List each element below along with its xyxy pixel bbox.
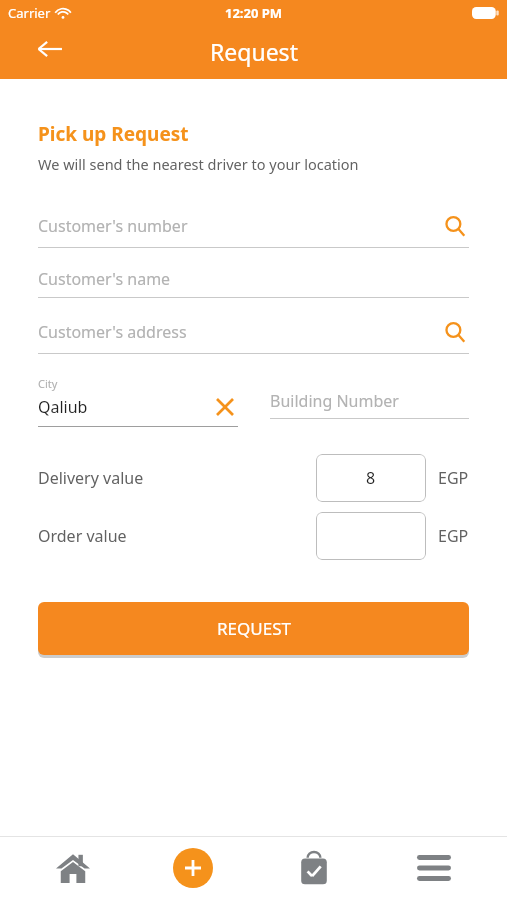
staticText: Customer's number: [38, 215, 441, 237]
button[interactable]: [316, 512, 426, 560]
button[interactable]: Back: [28, 27, 72, 71]
staticText: Order value: [38, 525, 316, 547]
staticText: Request: [210, 36, 298, 67]
button[interactable]: Home: [25, 836, 121, 900]
button[interactable]: Building Number: [270, 390, 469, 412]
button[interactable]: Search: [441, 212, 469, 240]
staticText: Customer's address: [38, 321, 441, 343]
button[interactable]: Customer's address: [38, 318, 469, 354]
button[interactable]: 8: [316, 454, 426, 502]
button[interactable]: Qaliub: [38, 394, 238, 420]
button[interactable]: Customer's name: [38, 268, 469, 298]
staticText: Customer's name: [38, 268, 469, 290]
button[interactable]: Search: [441, 318, 469, 346]
staticText: Carrier: [8, 4, 51, 22]
staticText: Building Number: [270, 390, 399, 412]
staticText: Delivery value: [38, 467, 316, 489]
staticText: Qaliub: [38, 396, 212, 418]
staticText: City: [38, 376, 58, 391]
staticText: EGP: [438, 467, 469, 489]
button[interactable]: Orders: [266, 836, 362, 900]
staticText: 8: [366, 467, 376, 489]
staticText: We will send the nearest driver to your …: [38, 154, 359, 174]
button[interactable]: Clear city: [212, 394, 238, 420]
staticText: REQUEST: [217, 617, 291, 640]
staticText: 12:20 PM: [225, 4, 283, 22]
button[interactable]: REQUEST: [38, 602, 469, 655]
button[interactable]: Customer's number: [38, 212, 469, 248]
button[interactable]: Add request: [145, 836, 241, 900]
staticText: EGP: [438, 525, 469, 547]
staticText: Pick up Request: [38, 121, 189, 147]
button[interactable]: Menu: [386, 836, 482, 900]
